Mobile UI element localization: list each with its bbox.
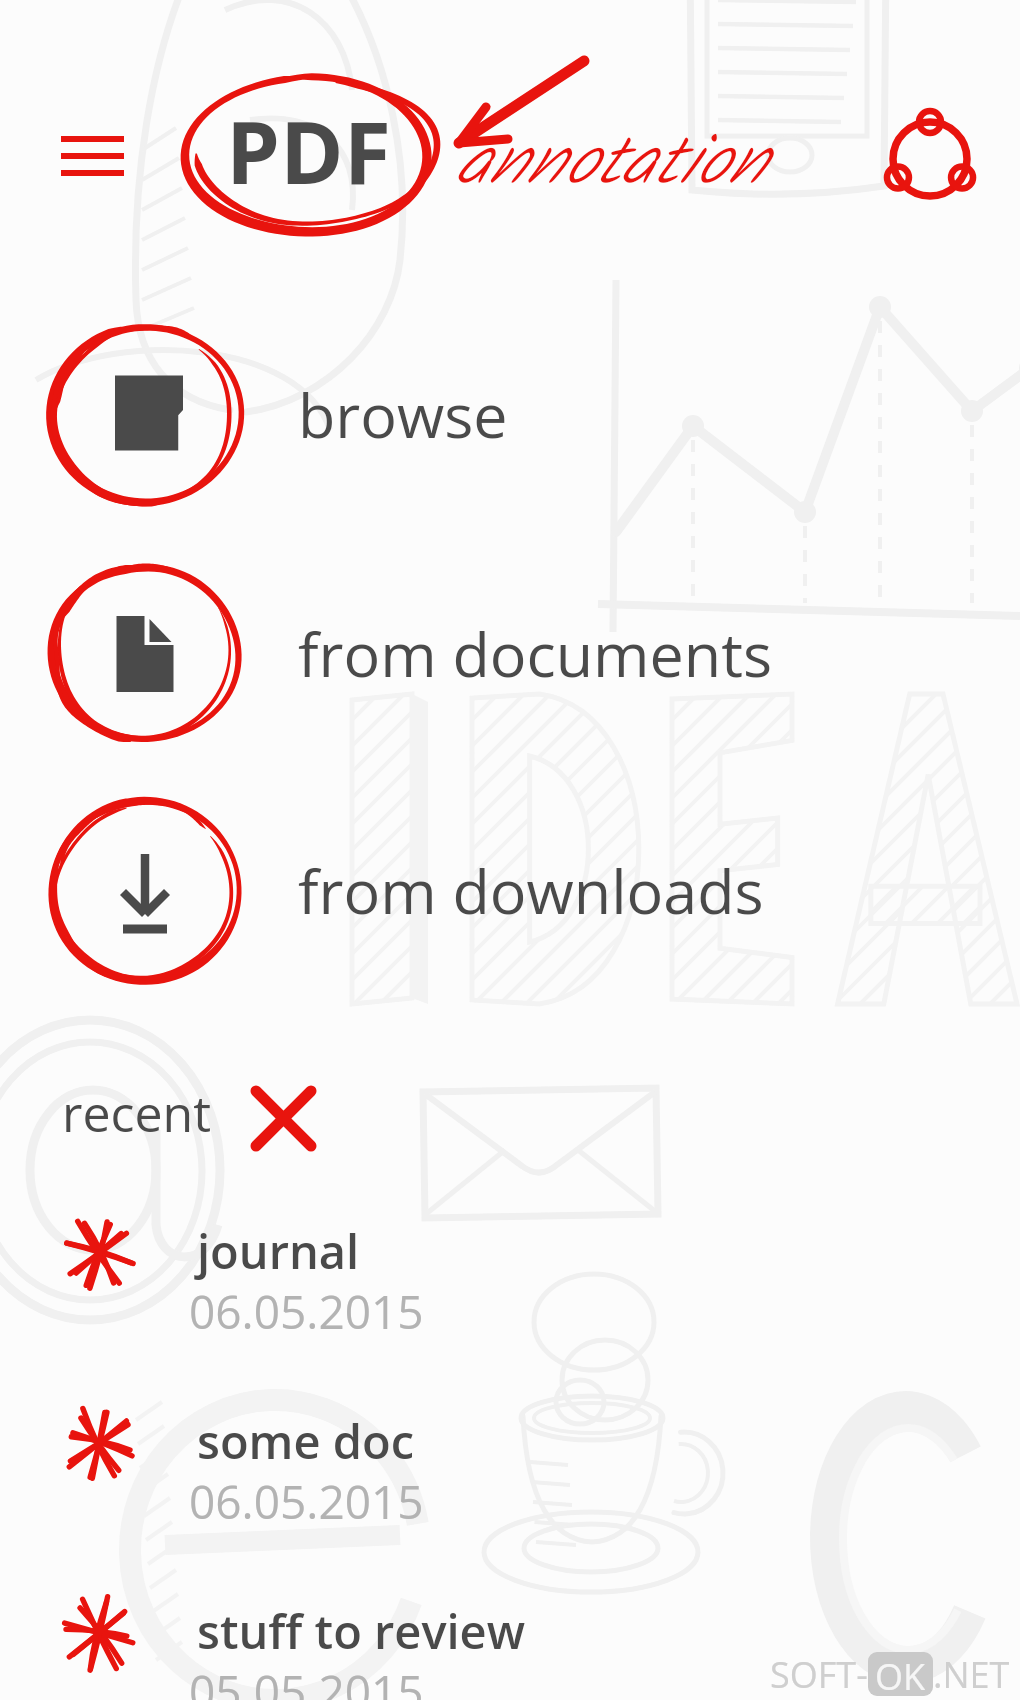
staticText: 06.05.2015 xyxy=(189,1280,424,1343)
staticText: OK xyxy=(875,1652,926,1696)
staticText: .NET xyxy=(933,1650,1010,1698)
staticText: from documents xyxy=(298,612,773,695)
staticText: 06.05.2015 xyxy=(189,1470,424,1533)
button[interactable]: from documents xyxy=(0,534,1020,772)
staticText: recent xyxy=(62,1079,212,1147)
staticText: PDF xyxy=(226,92,391,209)
staticText: annotation xyxy=(455,107,764,222)
button[interactable]: some doc xyxy=(0,1409,1020,1585)
staticText: browse xyxy=(298,373,508,456)
staticText: SOFT- xyxy=(770,1650,868,1698)
button[interactable]: Share xyxy=(875,104,985,214)
button[interactable]: Clear recent xyxy=(239,1074,327,1162)
button[interactable]: from downloads xyxy=(0,771,1020,1009)
staticText: from downloads xyxy=(298,849,764,932)
staticText: journal xyxy=(197,1219,360,1283)
button[interactable]: stuff to review xyxy=(0,1599,1020,1700)
button[interactable]: PDF xyxy=(174,70,440,240)
button[interactable]: Menu xyxy=(40,118,144,196)
staticText: 05.05.2015 xyxy=(189,1660,424,1700)
staticText: some doc xyxy=(197,1409,414,1473)
button[interactable]: journal xyxy=(0,1219,1020,1395)
staticText: stuff to review xyxy=(197,1599,526,1663)
button[interactable]: browse xyxy=(0,295,1020,533)
